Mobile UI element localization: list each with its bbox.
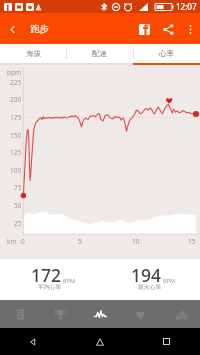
staticText: 10 xyxy=(132,237,140,246)
staticText: 100 xyxy=(10,166,22,175)
button[interactable]: Heart rate xyxy=(120,300,160,328)
button[interactable]: Home xyxy=(66,328,133,355)
staticText: 200 xyxy=(10,95,22,104)
staticText: BPM xyxy=(63,277,75,284)
staticText: bpm xyxy=(7,68,22,77)
button[interactable]: Recent apps xyxy=(133,328,200,355)
staticText: 125 xyxy=(10,148,22,157)
staticText: 海拔 xyxy=(26,49,41,58)
staticText: 172 xyxy=(31,263,62,287)
button[interactable]: Records xyxy=(0,300,40,328)
staticText: 75 xyxy=(14,183,22,192)
staticText: 5 xyxy=(78,237,82,246)
staticText: 最大心率 xyxy=(138,283,162,290)
staticText: 50 xyxy=(14,201,22,210)
button[interactable]: 心率 xyxy=(133,44,200,63)
staticText: 225 xyxy=(10,78,22,87)
button[interactable]: Share to Facebook xyxy=(132,17,156,41)
staticText: 15 xyxy=(188,237,196,246)
staticText: 12:07 xyxy=(176,1,197,12)
button[interactable]: 海拔 xyxy=(0,44,66,63)
staticText: 0 xyxy=(21,237,25,246)
staticText: km xyxy=(7,237,17,246)
button[interactable]: Achievements xyxy=(40,300,80,328)
button[interactable]: 配速 xyxy=(66,44,133,63)
staticText: 25 xyxy=(14,219,22,228)
staticText: BPM xyxy=(163,277,175,284)
button[interactable]: Activity xyxy=(80,300,120,328)
staticText: 194 xyxy=(131,263,162,287)
button[interactable]: 194 xyxy=(100,259,200,300)
staticText: 配速 xyxy=(92,49,107,58)
staticText: 心率 xyxy=(159,49,174,58)
button[interactable]: Statistics xyxy=(160,300,200,328)
button[interactable]: Back xyxy=(0,328,66,355)
button[interactable]: Share xyxy=(156,17,180,41)
staticText: 平均心率 xyxy=(38,283,62,290)
button[interactable]: More options xyxy=(180,19,200,39)
staticText: 150 xyxy=(10,131,22,140)
staticText: 175 xyxy=(10,113,22,122)
staticText: 跑步 xyxy=(30,23,49,35)
button[interactable]: 172 xyxy=(0,259,100,300)
button[interactable]: Back xyxy=(0,17,24,41)
